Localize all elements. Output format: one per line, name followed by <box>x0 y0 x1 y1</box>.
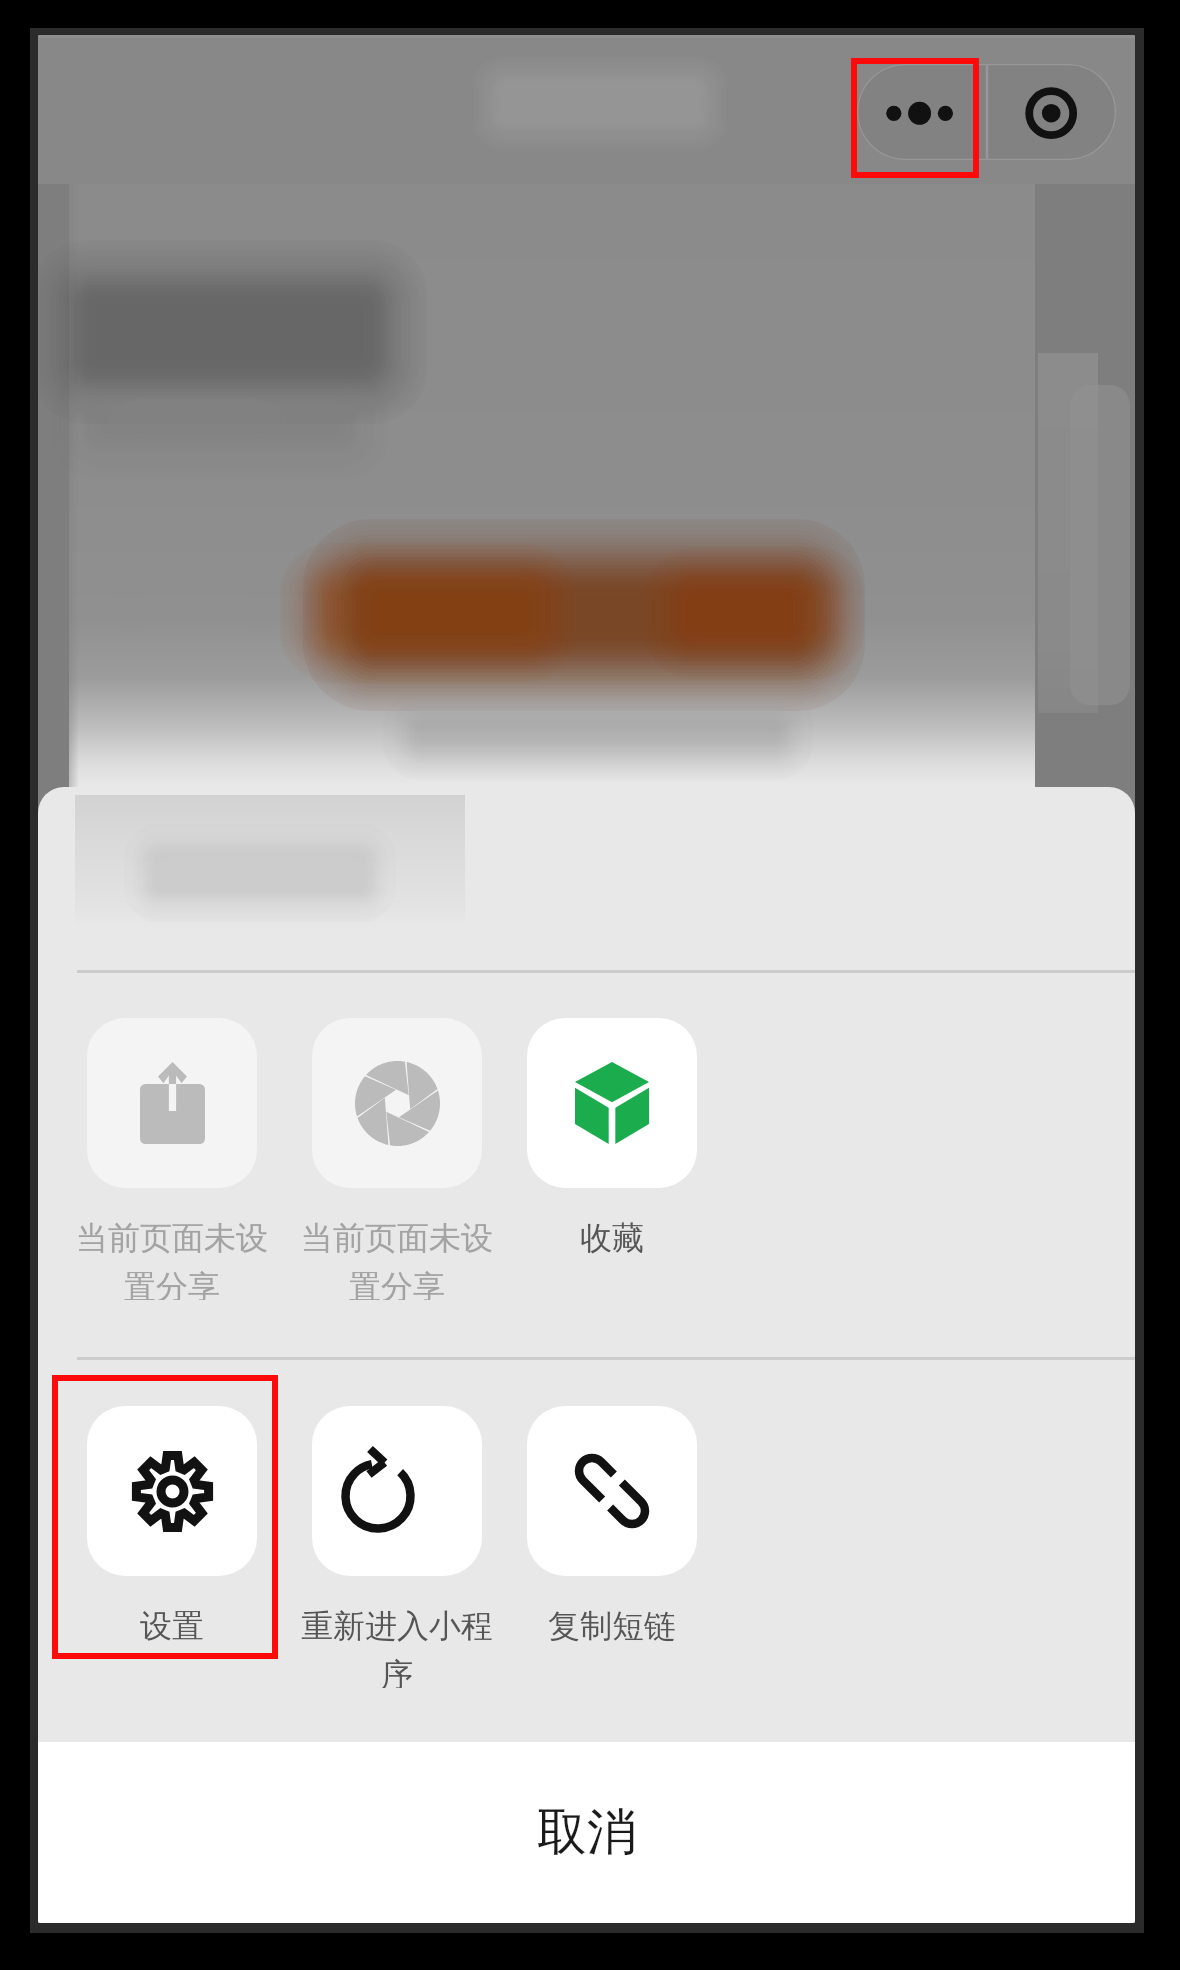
button[interactable]: More options <box>857 64 987 160</box>
staticText: 取消 <box>537 1801 637 1864</box>
button[interactable]: 重新进入小程序 <box>274 1406 520 1688</box>
other: annotation <box>851 58 979 178</box>
button[interactable]: 当前页面未设置分享 <box>274 1018 520 1300</box>
staticText: 复制短链 <box>511 1606 713 1646</box>
button[interactable]: 复制短链 <box>489 1406 735 1646</box>
staticText: 重新进入小程序 <box>296 1606 498 1688</box>
button[interactable]: Close mini program <box>987 64 1116 160</box>
staticText: 当前页面未设置分享 <box>296 1218 498 1300</box>
button[interactable]: 设置 <box>49 1406 295 1646</box>
other: annotation <box>52 1375 278 1659</box>
button[interactable]: 当前页面未设置分享 <box>49 1018 295 1300</box>
staticText: 收藏 <box>511 1218 713 1258</box>
button[interactable]: 收藏 <box>489 1018 735 1258</box>
staticText: 当前页面未设置分享 <box>71 1218 273 1300</box>
staticText: 设置 <box>71 1606 273 1646</box>
button[interactable]: 取消 <box>38 1742 1135 1923</box>
